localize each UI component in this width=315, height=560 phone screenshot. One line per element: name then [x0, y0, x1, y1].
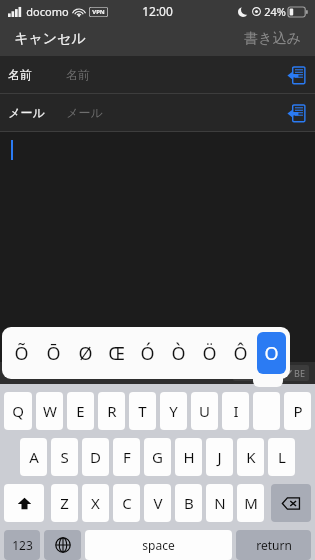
staticText: B [184, 493, 194, 513]
button[interactable]: P [284, 392, 311, 430]
button[interactable]: O [257, 332, 286, 374]
staticText: Ø [78, 341, 93, 366]
staticText: J [217, 447, 222, 467]
button[interactable]: D [82, 438, 109, 476]
button[interactable]: Z [51, 484, 78, 522]
button[interactable] [0, 132, 315, 332]
staticText: C [122, 493, 132, 513]
staticText: Z [60, 493, 69, 513]
button[interactable]: H [175, 438, 202, 476]
button[interactable]: 名前 [0, 56, 315, 93]
button[interactable]: Backspace [271, 484, 311, 522]
button[interactable]: R [98, 392, 125, 430]
staticText: S [60, 447, 69, 467]
staticText: VPN [92, 8, 105, 16]
staticText: BE [294, 367, 305, 379]
staticText: かな [54, 366, 77, 380]
button[interactable]: N [206, 484, 233, 522]
staticText: T [138, 401, 147, 421]
button[interactable]: E [67, 392, 94, 430]
button[interactable]: Œ [102, 332, 131, 374]
button[interactable]: 123 [4, 530, 40, 560]
button[interactable]: Ô [226, 332, 255, 374]
button[interactable]: G [144, 438, 171, 476]
staticText: R [107, 401, 117, 421]
button[interactable]: Camera [6, 364, 32, 382]
staticText: P [293, 401, 303, 421]
button[interactable]: BE [280, 365, 309, 381]
button[interactable]: かな [50, 366, 81, 380]
staticText: H [183, 447, 195, 467]
staticText: メール [66, 105, 103, 120]
staticText: 12:00 [142, 3, 173, 19]
staticText: I [233, 401, 239, 421]
staticText: Y [169, 401, 178, 421]
button[interactable]: Ronin [233, 365, 276, 381]
staticText: E [76, 401, 85, 421]
button[interactable]: F [113, 438, 140, 476]
staticText: M [244, 493, 258, 513]
staticText: 名前 [66, 67, 90, 82]
button[interactable]: K [237, 438, 264, 476]
button[interactable]: Ò [164, 332, 193, 374]
button[interactable]: space [85, 530, 232, 560]
staticText: Ō [46, 341, 61, 366]
button[interactable] [253, 392, 280, 430]
staticText: Q [12, 401, 24, 421]
button[interactable]: B [175, 484, 202, 522]
staticText: A [29, 447, 39, 467]
button[interactable]: T [129, 392, 156, 430]
staticText: O [264, 341, 279, 366]
staticText: Œ [108, 341, 125, 366]
staticText: Ronin [247, 367, 272, 379]
staticText: 24% [264, 4, 286, 19]
staticText: Ó [140, 341, 155, 366]
button[interactable]: return [236, 530, 311, 560]
button[interactable]: L [268, 438, 295, 476]
staticText: U [199, 401, 210, 421]
staticText: G [152, 447, 163, 467]
staticText: L [278, 447, 286, 467]
staticText: メール [8, 105, 45, 120]
button[interactable]: Autofill [281, 60, 311, 90]
button[interactable]: M [237, 484, 264, 522]
staticText: キャンセル [14, 30, 86, 48]
staticText: docomo [26, 4, 69, 19]
button[interactable]: W [36, 392, 63, 430]
staticText: N [214, 493, 226, 513]
button[interactable]: Ō [38, 332, 68, 374]
button[interactable]: Õ [6, 332, 36, 374]
staticText: F [123, 447, 131, 467]
button[interactable]: A [20, 438, 47, 476]
staticText: return [256, 537, 292, 553]
button[interactable]: I [222, 392, 249, 430]
button[interactable]: S [51, 438, 78, 476]
button[interactable]: メール [0, 94, 315, 131]
staticText: space [142, 537, 175, 553]
button[interactable]: 書き込み [230, 24, 315, 54]
button[interactable]: J [206, 438, 233, 476]
button[interactable]: Autofill [281, 98, 311, 128]
staticText: 123 [12, 537, 33, 553]
staticText: Ö [202, 341, 217, 366]
button[interactable]: X [82, 484, 109, 522]
staticText: 書き込み [244, 30, 301, 48]
button[interactable]: キャンセル [0, 24, 100, 54]
staticText: X [91, 493, 100, 513]
button[interactable]: Shift [4, 484, 44, 522]
button[interactable]: Change keyboard [44, 530, 81, 560]
staticText: 名前 [8, 67, 32, 82]
staticText: K [246, 447, 256, 467]
button[interactable]: U [191, 392, 218, 430]
button[interactable]: Ø [70, 332, 100, 374]
button[interactable]: Ó [133, 332, 162, 374]
staticText: Ô [233, 341, 248, 366]
staticText: Ò [171, 341, 186, 366]
staticText: D [90, 447, 101, 467]
staticText: Õ [14, 341, 29, 366]
button[interactable]: Y [160, 392, 187, 430]
button[interactable]: C [113, 484, 140, 522]
button[interactable]: Q [4, 392, 32, 430]
button[interactable]: V [144, 484, 171, 522]
button[interactable]: Ö [195, 332, 224, 374]
